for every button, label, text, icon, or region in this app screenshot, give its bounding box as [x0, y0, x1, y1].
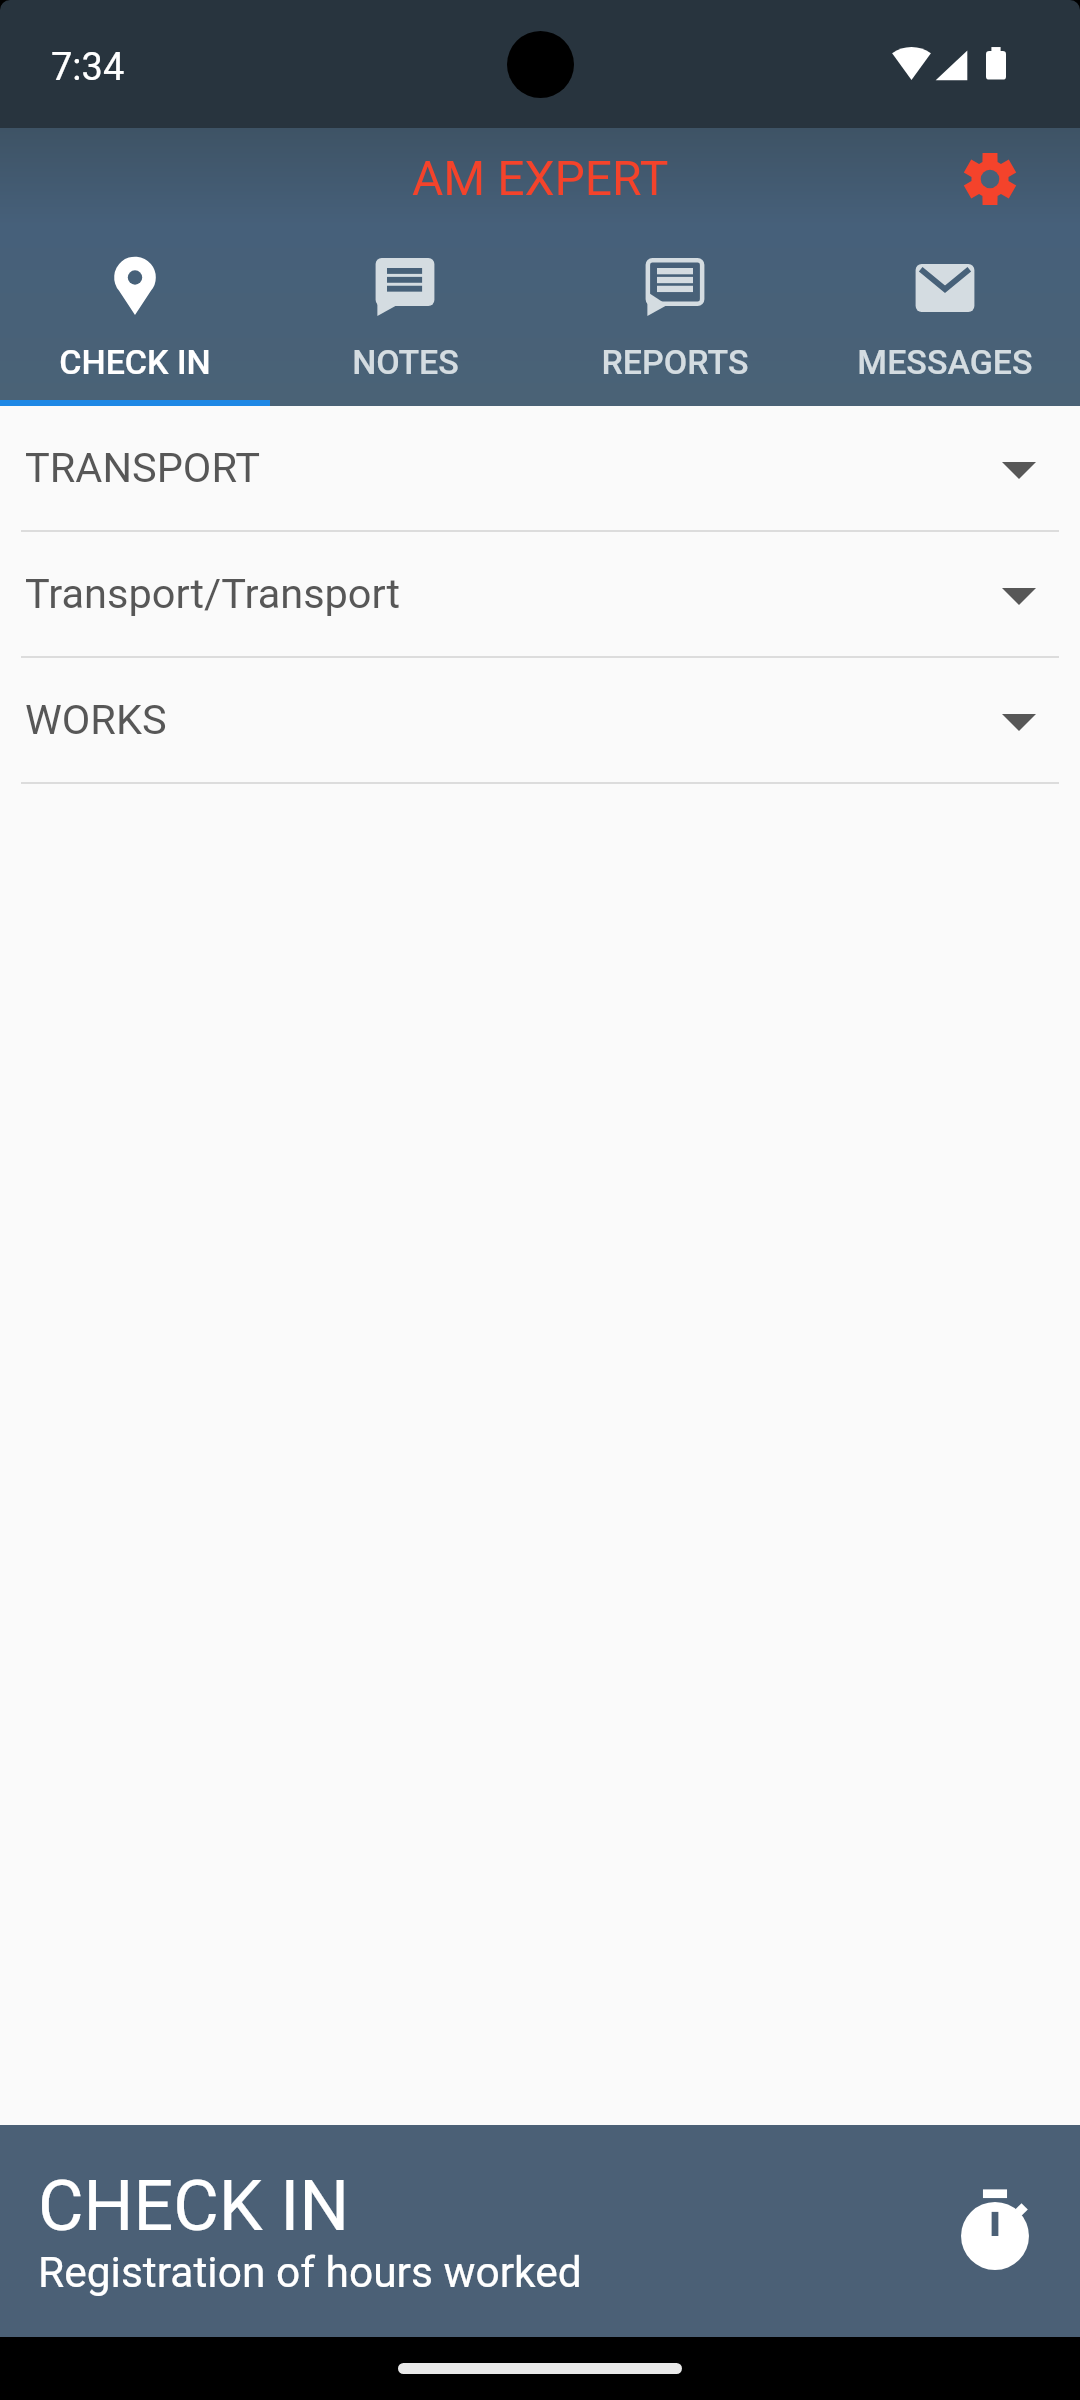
- button[interactable]: CHECK IN: [0, 234, 270, 406]
- staticText: 7:34: [51, 45, 125, 90]
- staticText: Transport/Transport: [25, 569, 401, 618]
- button[interactable]: NOTES: [270, 234, 540, 406]
- staticText: TRANSPORT: [25, 443, 261, 492]
- button[interactable]: Start timer: [944, 2180, 1046, 2282]
- staticText: AM EXPERT: [412, 150, 669, 206]
- button[interactable]: TRANSPORT: [0, 406, 1080, 532]
- button[interactable]: Settings: [954, 143, 1026, 215]
- staticText: CHECK IN: [59, 342, 211, 382]
- staticText: CHECK IN: [38, 2165, 350, 2247]
- button[interactable]: MESSAGES: [810, 234, 1080, 406]
- staticText: NOTES: [352, 342, 459, 382]
- button[interactable]: Transport/Transport: [0, 532, 1080, 658]
- staticText: WORKS: [25, 695, 167, 744]
- staticText: REPORTS: [601, 342, 749, 382]
- button[interactable]: WORKS: [0, 658, 1080, 784]
- staticText: Registration of hours worked: [38, 2248, 582, 2298]
- button[interactable]: REPORTS: [540, 234, 810, 406]
- staticText: MESSAGES: [857, 342, 1033, 382]
- button[interactable]: CHECK IN: [0, 2125, 1080, 2337]
